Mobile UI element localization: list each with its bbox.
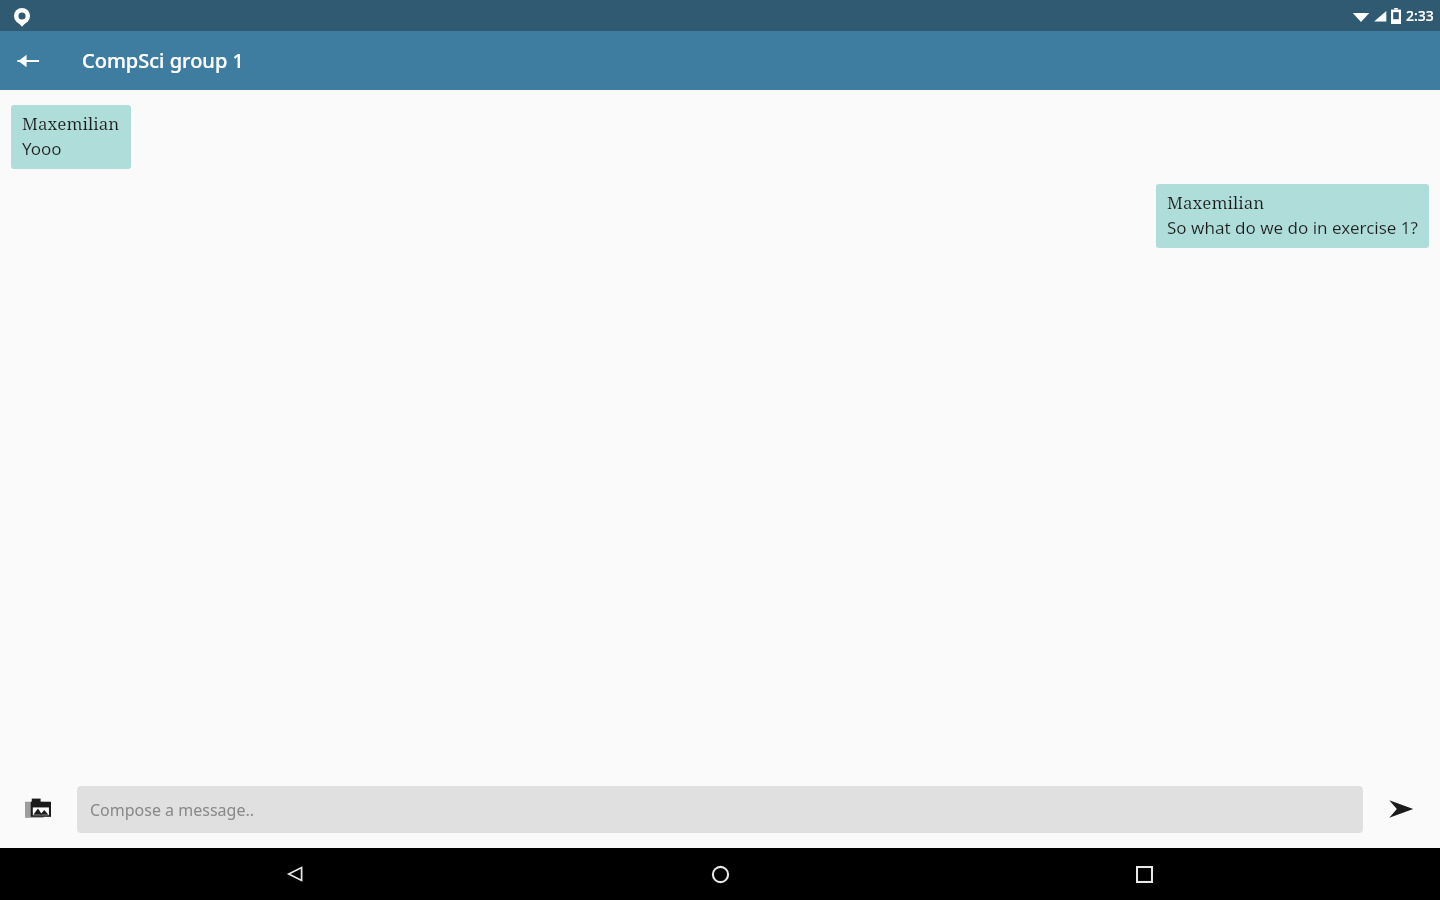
staticText: CompSci group 1 <box>82 47 244 74</box>
button[interactable]: Maxemilian <box>11 105 131 169</box>
button[interactable]: Back <box>0 848 480 900</box>
button[interactable]: Send <box>1378 786 1424 832</box>
staticText: So what do we do in exercise 1? <box>1167 216 1418 239</box>
button[interactable]: Attach image <box>14 785 62 833</box>
button[interactable]: Maxemilian <box>1156 184 1429 248</box>
button[interactable]: Recents <box>960 848 1440 900</box>
staticText: 2:33 <box>1406 6 1434 25</box>
button[interactable]: Home <box>480 848 960 900</box>
staticText: Maxemilian <box>22 112 120 135</box>
staticText: Maxemilian <box>1167 191 1265 214</box>
staticText: Yooo <box>22 137 62 160</box>
button[interactable]: Compose a message.. <box>77 786 1363 833</box>
staticText: Compose a message.. <box>90 799 254 821</box>
button[interactable]: Back <box>0 33 56 89</box>
